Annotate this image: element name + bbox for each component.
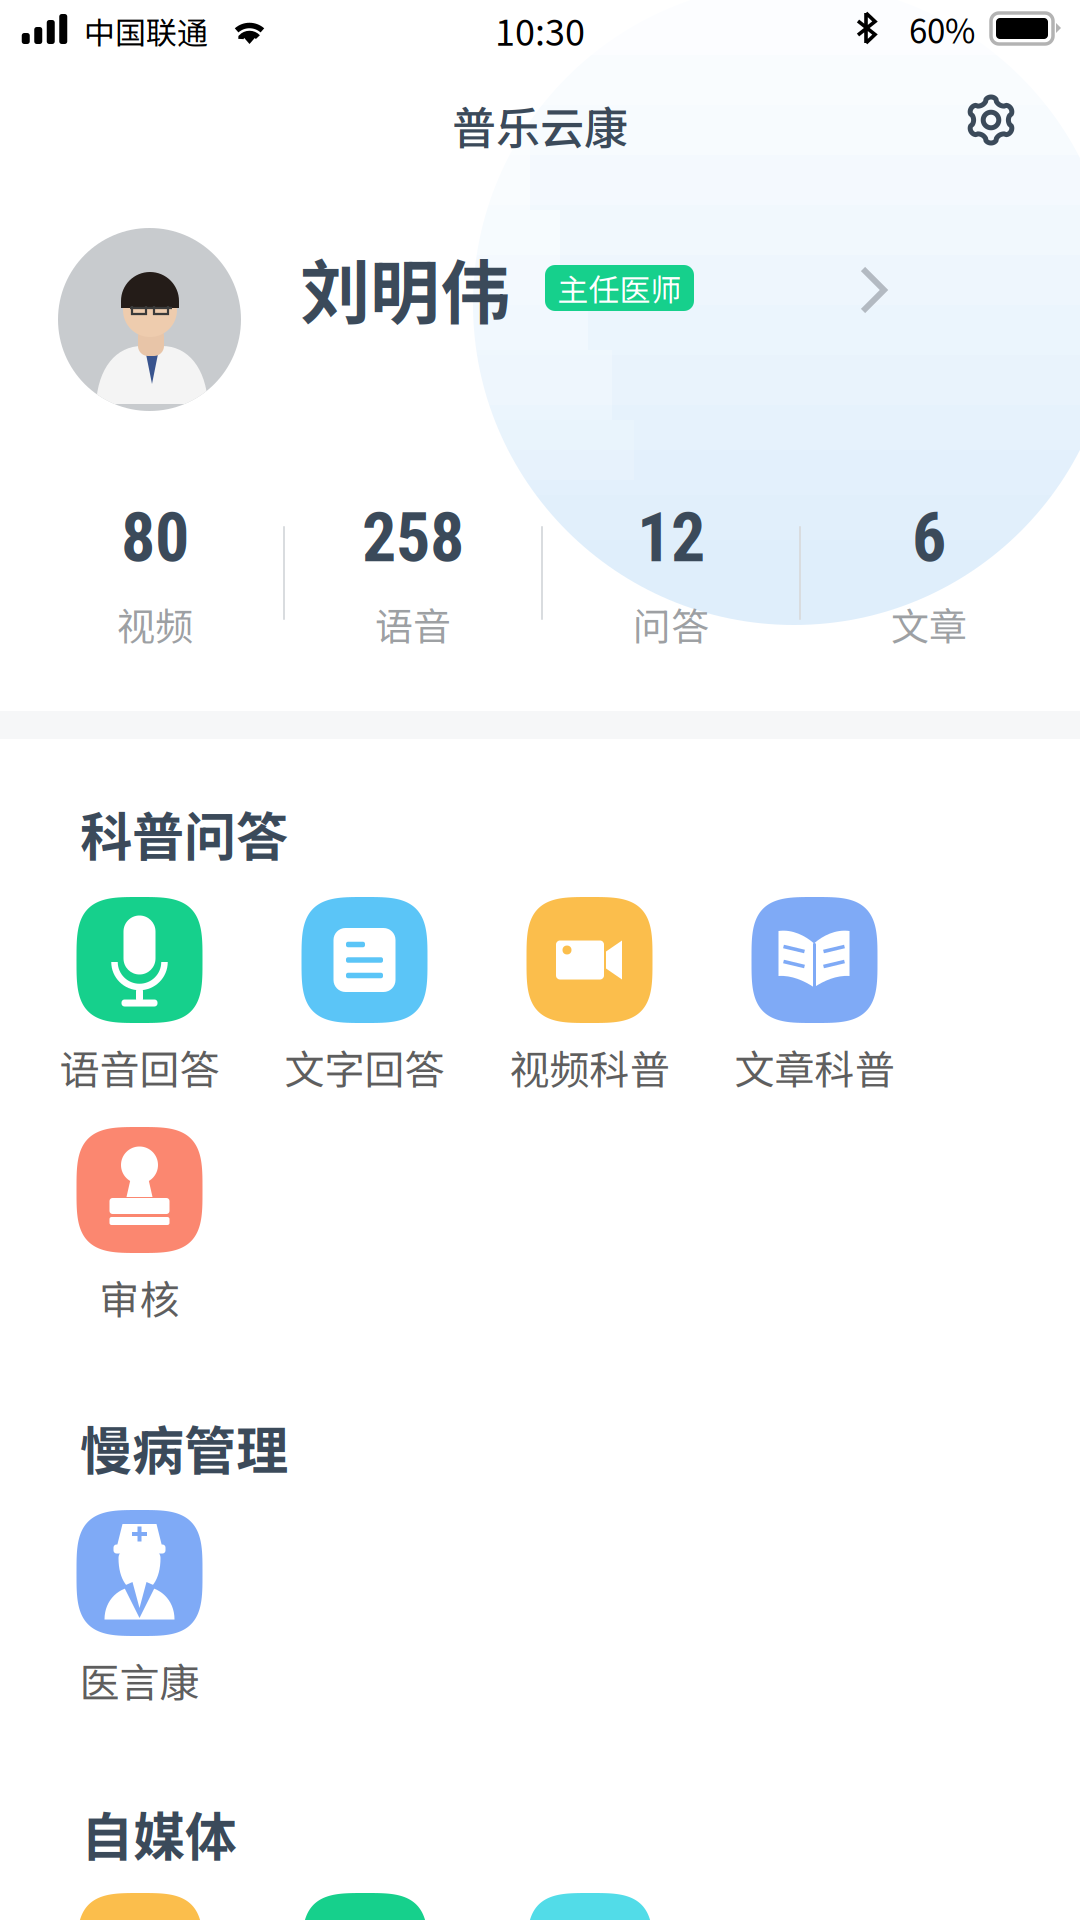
staticText: 60%	[909, 5, 975, 53]
staticText: 主任医师	[557, 266, 681, 310]
staticText: 慢病管理	[80, 1409, 288, 1485]
button[interactable]	[0, 218, 1080, 418]
staticText: 80	[121, 498, 189, 578]
staticText: 12	[637, 498, 705, 578]
staticText: 文章	[891, 596, 967, 651]
staticText: 视频科普	[509, 1038, 669, 1096]
staticText: 6	[912, 498, 946, 578]
staticText: 中国联通	[84, 9, 208, 53]
button[interactable]: 语音回答	[27, 897, 252, 1093]
staticText: 刘明伟	[300, 237, 510, 339]
button[interactable]: 审核	[27, 1127, 252, 1323]
button[interactable]: 微信	[302, 1893, 428, 1920]
button[interactable]: 文章科普	[702, 897, 927, 1093]
staticText: 语音	[375, 596, 451, 651]
button[interactable]: 文字回答	[252, 897, 477, 1093]
staticText: 视频	[117, 596, 193, 651]
staticText: 问答	[633, 596, 709, 651]
button[interactable]: 医言康	[27, 1510, 252, 1706]
staticText: 10:30	[495, 4, 585, 56]
staticText: 语音回答	[59, 1038, 219, 1096]
button[interactable]: 视频科普	[477, 897, 702, 1093]
staticText: 自媒体	[81, 1795, 237, 1871]
staticText: 文字回答	[284, 1038, 444, 1096]
staticText: 文章科普	[734, 1038, 894, 1096]
staticText: 审核	[99, 1268, 179, 1326]
button[interactable]: 微博	[77, 1893, 203, 1920]
button[interactable]: 抖音	[527, 1893, 653, 1920]
button[interactable]: 设置	[949, 78, 1033, 162]
staticText: 普乐云康	[452, 93, 628, 157]
staticText: 医言康	[79, 1651, 199, 1709]
staticText: 科普问答	[80, 795, 288, 871]
staticText: 258	[362, 498, 464, 578]
